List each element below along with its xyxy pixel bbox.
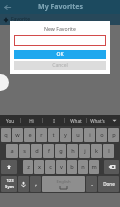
button[interactable]: a — [6, 144, 18, 158]
staticText: What — [70, 118, 82, 124]
button[interactable]: Cancel — [14, 61, 106, 70]
staticText: s — [23, 147, 26, 155]
button[interactable]: Done — [98, 176, 119, 192]
staticText: 123 — [6, 178, 14, 184]
staticText: Sym — [5, 184, 14, 190]
staticText: Cancel — [52, 62, 68, 69]
button[interactable]: Hi — [21, 115, 42, 126]
button[interactable]: I — [43, 115, 64, 126]
staticText: , — [35, 180, 37, 188]
staticText: b — [70, 163, 74, 171]
button[interactable]: i — [84, 128, 95, 142]
staticText: . — [91, 180, 93, 188]
staticText: d — [35, 147, 39, 155]
staticText: z — [27, 163, 30, 171]
staticText: o — [100, 131, 104, 139]
button[interactable]: g — [55, 144, 66, 158]
button[interactable]: s — [19, 144, 30, 158]
staticText: c — [49, 163, 52, 171]
staticText: English — [56, 179, 71, 185]
staticText: OK — [56, 51, 64, 58]
button[interactable]: You — [0, 115, 20, 126]
staticText: n — [81, 163, 85, 171]
button[interactable]: 123 — [1, 176, 17, 192]
staticText: New Favorite — [14, 25, 106, 32]
staticText: x — [38, 163, 41, 171]
staticText: Hi — [29, 118, 34, 124]
staticText: Done — [103, 181, 115, 187]
button[interactable]: , — [30, 176, 41, 192]
button[interactable]: p — [108, 128, 119, 142]
staticText: u — [76, 131, 80, 139]
button[interactable]: What's — [87, 115, 108, 126]
button[interactable]: . — [86, 176, 97, 192]
button[interactable]: y — [60, 128, 71, 142]
button[interactable]: q — [1, 128, 11, 142]
button[interactable]: OK — [14, 50, 106, 59]
staticText: w — [15, 131, 20, 139]
staticText: I — [53, 118, 55, 124]
button[interactable]: Voice input — [18, 176, 29, 192]
button[interactable]: h — [67, 144, 78, 158]
button[interactable]: d — [31, 144, 42, 158]
button[interactable]: Expand suggestions — [108, 115, 120, 126]
button[interactable]: Favorite — [0, 14, 120, 25]
button[interactable]: e — [24, 128, 35, 142]
staticText: v — [60, 163, 63, 171]
staticText: m — [91, 163, 97, 171]
button[interactable]: o — [96, 128, 107, 142]
button[interactable]: f — [43, 144, 54, 158]
staticText: h — [71, 147, 75, 155]
button[interactable]: w — [12, 128, 23, 142]
staticText: k — [95, 147, 98, 155]
staticText: y — [64, 131, 67, 139]
staticText: e — [28, 131, 32, 139]
button[interactable]: x — [34, 160, 44, 174]
button[interactable]: c — [45, 160, 55, 174]
button[interactable]: Shift — [1, 160, 17, 174]
button[interactable]: Backspace — [104, 160, 119, 174]
staticText: i — [89, 131, 91, 139]
button[interactable]: t — [48, 128, 59, 142]
button[interactable] — [14, 35, 106, 46]
staticText: l — [108, 147, 110, 155]
button[interactable]: u — [72, 128, 83, 142]
button[interactable]: k — [91, 144, 102, 158]
button[interactable]: Space — [42, 176, 85, 192]
staticText: Favorite — [11, 16, 30, 23]
button[interactable]: j — [79, 144, 90, 158]
button[interactable]: v — [56, 160, 66, 174]
button[interactable]: l — [103, 144, 114, 158]
staticText: a — [10, 147, 14, 155]
staticText: You — [6, 118, 14, 124]
staticText: q — [4, 131, 8, 139]
button[interactable]: What — [65, 115, 86, 126]
staticText: t — [52, 131, 55, 139]
staticText: My Favorites — [38, 2, 83, 12]
staticText: p — [112, 131, 116, 139]
button[interactable]: n — [78, 160, 88, 174]
button[interactable]: m — [89, 160, 99, 174]
button[interactable]: r — [36, 128, 47, 142]
staticText: What's — [90, 118, 105, 124]
button[interactable]: Back — [0, 0, 14, 14]
staticText: j — [84, 147, 86, 155]
staticText: r — [40, 131, 43, 139]
button[interactable]: b — [67, 160, 77, 174]
staticText: g — [59, 147, 63, 155]
staticText: f — [48, 147, 50, 155]
button[interactable]: z — [23, 160, 33, 174]
